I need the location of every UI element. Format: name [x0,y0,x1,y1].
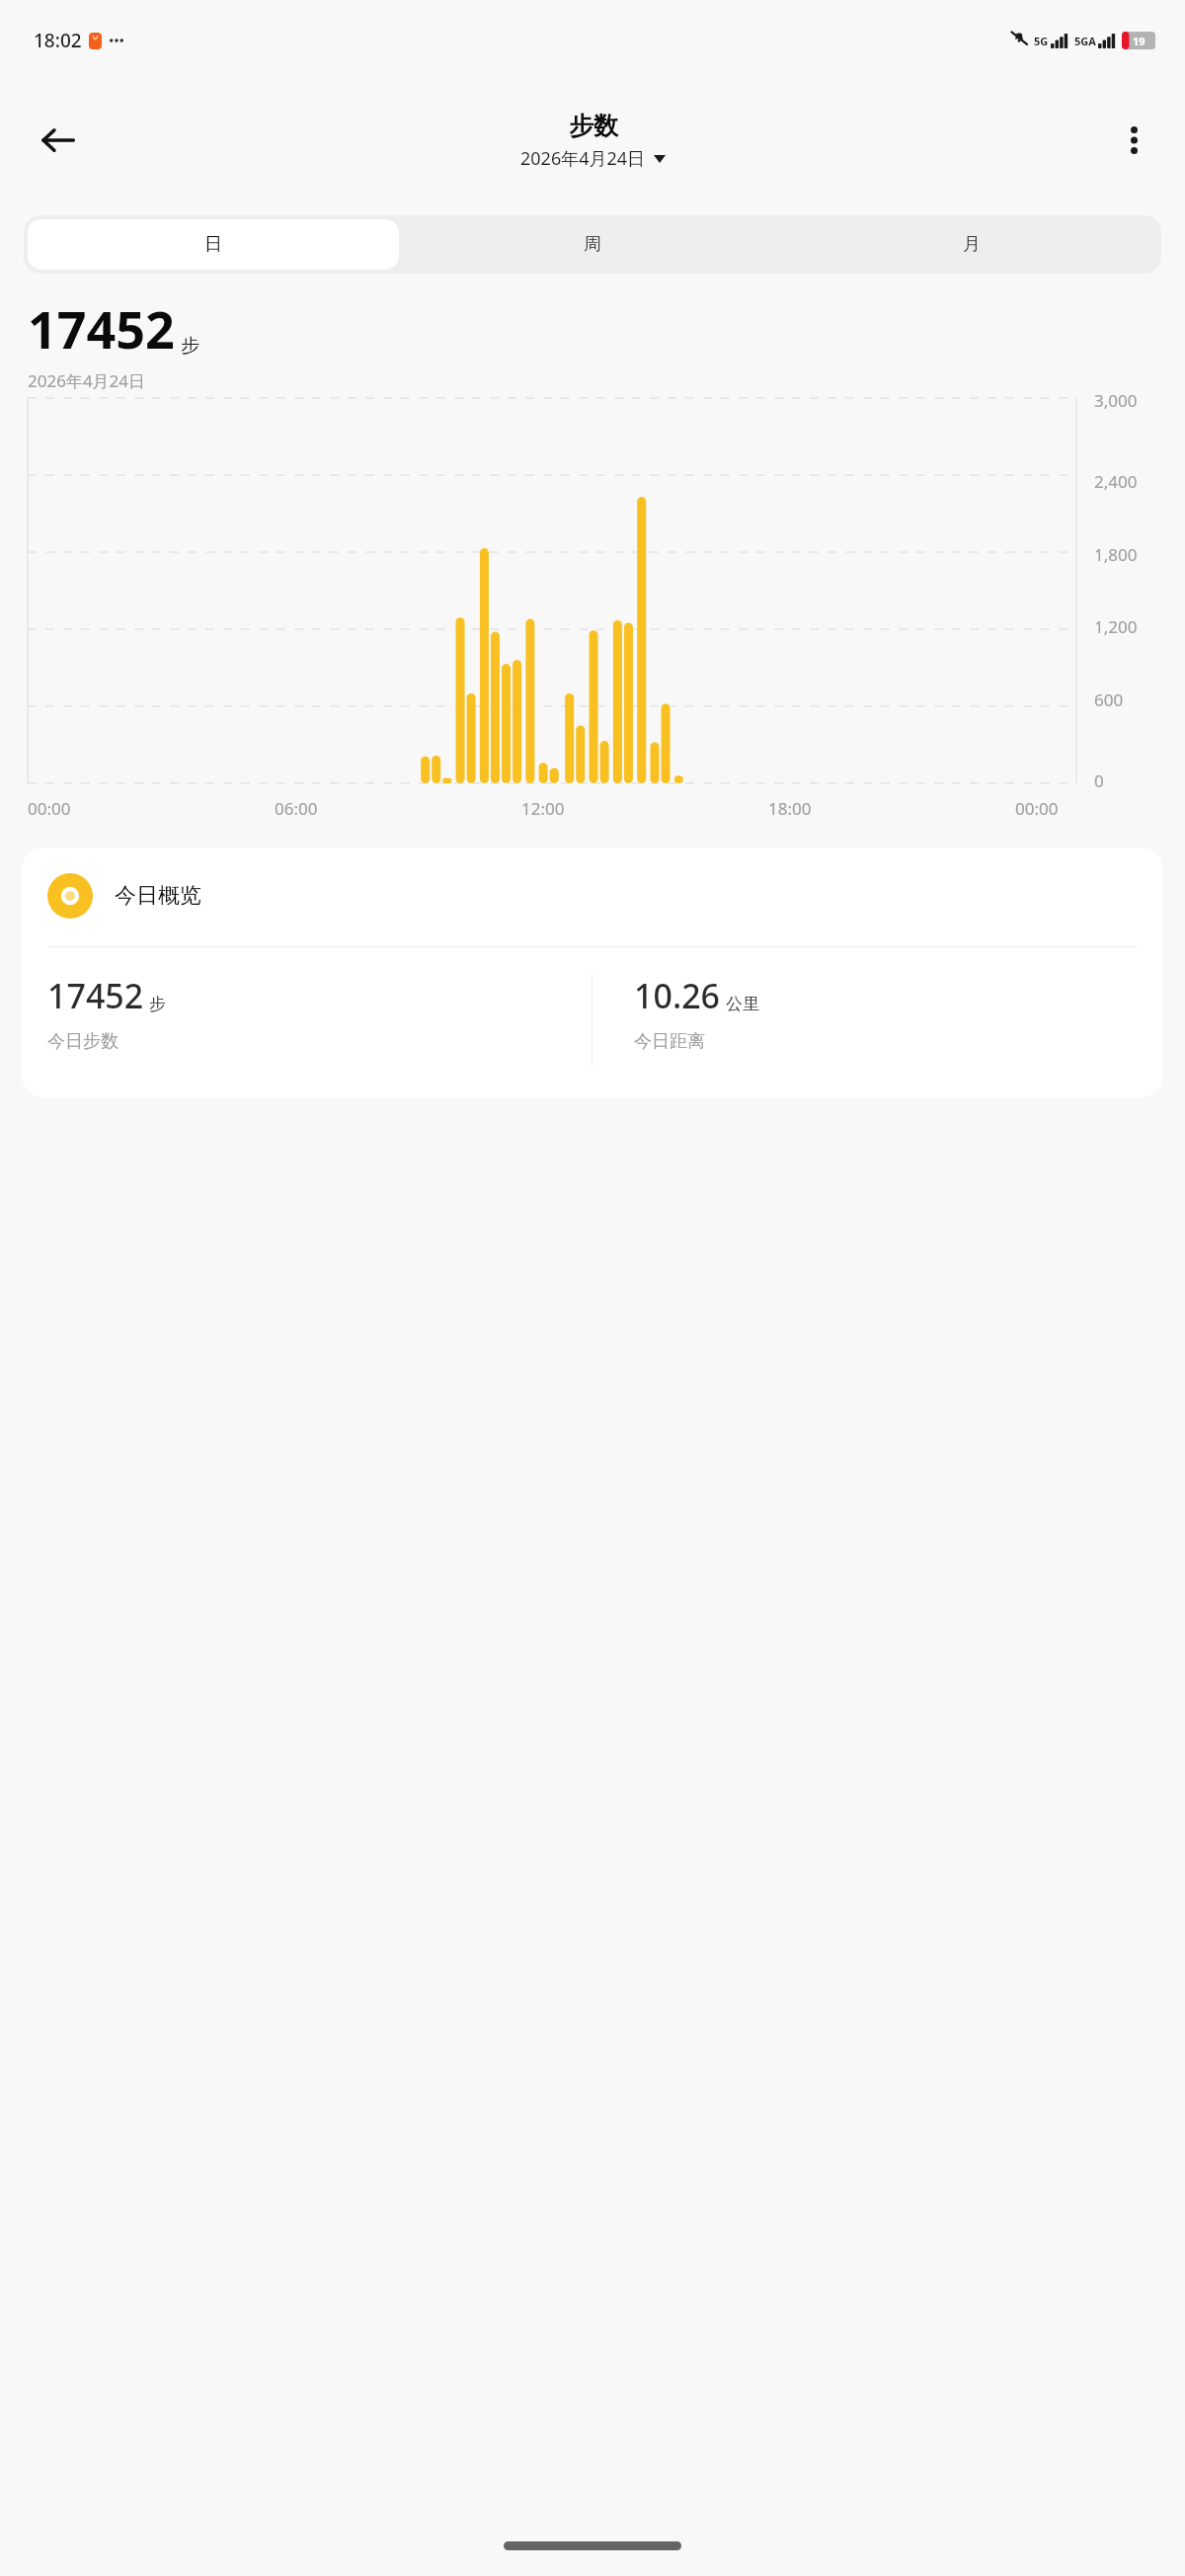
staticText: 17452 [47,973,144,1018]
button[interactable]: 周 [407,219,778,270]
staticText: 600 [1094,688,1124,711]
staticText: 周 [584,233,601,256]
staticText: 12:00 [521,797,565,820]
staticText: 今日概览 [115,882,201,910]
button[interactable]: More options [1106,113,1161,168]
staticText: 今日距离 [634,1030,705,1053]
staticText: 1,800 [1094,543,1138,566]
staticText: 2026年4月24日 [28,369,146,392]
staticText: 10.26 [634,973,721,1018]
staticText: 17452 [28,293,175,363]
staticText: 2,400 [1094,470,1138,493]
button[interactable]: 今日概览 [22,847,1163,1097]
button[interactable]: 步数 [520,111,666,171]
staticText: 18:02 [34,28,82,53]
button[interactable]: 日 [28,219,399,270]
staticText: 今日步数 [47,1030,118,1053]
staticText: 19 [1133,34,1145,48]
button[interactable]: Back [30,112,87,169]
staticText: 公里 [726,994,759,1014]
staticText: 18:00 [768,797,812,820]
staticText: 月 [963,233,981,256]
staticText: 5G [1034,34,1049,48]
staticText: 步数 [569,111,618,141]
staticText: 00:00 [28,797,71,820]
staticText: 5GA [1074,34,1096,48]
button[interactable]: 月 [786,219,1157,270]
staticText: 1,200 [1094,615,1138,638]
staticText: 步 [149,994,166,1014]
staticText: 步 [181,334,199,358]
staticText: 0 [1094,769,1104,792]
staticText: 06:00 [275,797,318,820]
staticText: 2026年4月24日 [520,146,646,171]
staticText: 3,000 [1094,389,1138,412]
staticText: 日 [204,233,222,256]
staticText: 00:00 [1015,797,1059,820]
